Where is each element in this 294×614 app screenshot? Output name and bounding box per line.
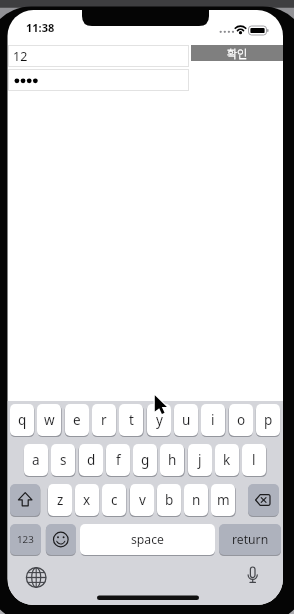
button[interactable]: e (65, 404, 89, 436)
staticText: b (165, 491, 174, 509)
button[interactable]: n (184, 484, 208, 516)
button[interactable]: d (79, 444, 103, 476)
button[interactable]: p (256, 404, 280, 436)
button[interactable]: 12 (8, 45, 189, 67)
button[interactable]: h (160, 444, 184, 476)
staticText: j (198, 451, 202, 469)
button[interactable]: s (51, 444, 75, 476)
button[interactable]: space (80, 524, 215, 555)
button[interactable]: j (188, 444, 212, 476)
staticText: f (116, 451, 121, 469)
button[interactable]: a (24, 444, 48, 476)
staticText: a (32, 451, 40, 469)
button[interactable]: f (106, 444, 130, 476)
staticText: s (60, 451, 67, 469)
staticText: v (139, 491, 146, 509)
staticText: x (83, 491, 91, 509)
staticText: r (101, 411, 107, 429)
staticText: 12 (13, 48, 28, 65)
staticText: k (223, 451, 231, 469)
staticText: 123 (17, 533, 34, 546)
button[interactable]: y (147, 404, 171, 436)
staticText: y (156, 411, 163, 429)
button[interactable]: q (10, 404, 34, 436)
staticText: h (168, 451, 177, 469)
staticText: l (252, 451, 256, 469)
staticText: w (44, 411, 55, 429)
staticText: p (264, 411, 273, 429)
staticText: 11:38 (26, 20, 55, 34)
button[interactable]: o (229, 404, 253, 436)
button[interactable]: b (157, 484, 181, 516)
button[interactable]: t (119, 404, 143, 436)
staticText: z (57, 491, 64, 509)
button[interactable]: i (201, 404, 225, 436)
staticText: i (211, 411, 215, 429)
button[interactable] (248, 484, 279, 516)
staticText: n (192, 491, 201, 509)
button[interactable]: 123 (10, 524, 41, 555)
staticText: q (18, 411, 27, 429)
staticText: g (141, 451, 150, 469)
staticText: m (217, 491, 230, 509)
staticText: u (182, 411, 191, 429)
button[interactable] (8, 69, 189, 91)
button[interactable]: l (242, 444, 266, 476)
button[interactable]: return (219, 524, 281, 555)
button[interactable]: c (102, 484, 126, 516)
staticText: c (111, 491, 118, 509)
staticText: return (232, 531, 269, 548)
button[interactable] (10, 484, 40, 516)
button[interactable]: v (130, 484, 154, 516)
button[interactable] (46, 524, 76, 555)
button[interactable]: k (215, 444, 239, 476)
button[interactable]: w (37, 404, 61, 436)
button[interactable]: m (211, 484, 235, 516)
button[interactable]: x (75, 484, 99, 516)
button[interactable]: u (174, 404, 198, 436)
staticText: 확인 (227, 45, 248, 61)
staticText: d (87, 451, 96, 469)
button[interactable]: g (133, 444, 157, 476)
button[interactable]: r (92, 404, 116, 436)
button[interactable]: 확인 (191, 45, 283, 61)
staticText: o (237, 411, 246, 429)
staticText: e (73, 411, 81, 429)
staticText: space (131, 531, 164, 548)
button[interactable]: z (48, 484, 72, 516)
staticText: t (129, 411, 134, 429)
